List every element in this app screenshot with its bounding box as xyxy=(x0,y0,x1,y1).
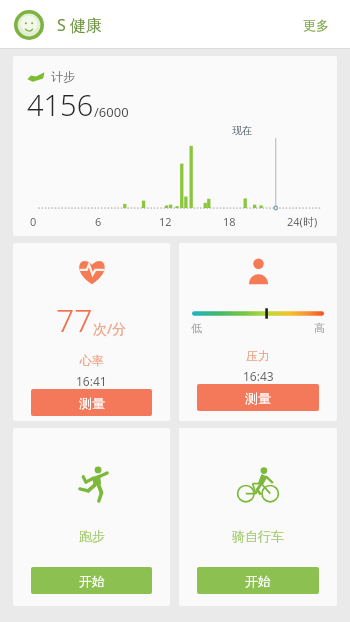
button[interactable]: 开始 xyxy=(31,567,152,594)
staticText: 计步 xyxy=(51,69,75,84)
button[interactable]: 测量 xyxy=(197,384,319,411)
staticText: 77 xyxy=(56,298,93,342)
other: 骑自行车 xyxy=(235,461,281,507)
button[interactable]: 测量 xyxy=(31,389,152,416)
staticText: 开始 xyxy=(79,573,105,589)
staticText: 测量 xyxy=(245,390,271,406)
button[interactable]: 更多 xyxy=(298,12,334,38)
button[interactable]: 开始 xyxy=(197,567,319,594)
staticText: /6000 xyxy=(94,103,129,121)
staticText: 骑自行车 xyxy=(232,528,284,544)
staticText: 6 xyxy=(95,214,159,229)
other: Profile xyxy=(14,10,44,40)
staticText: 高 xyxy=(314,321,325,335)
staticText: 心率 xyxy=(80,353,104,368)
staticText: 0 xyxy=(30,214,95,229)
button[interactable]: 计步 xyxy=(13,56,337,236)
button[interactable]: 骑自行车 xyxy=(179,428,337,606)
button[interactable]: 跑步 xyxy=(13,428,170,606)
staticText: 18 xyxy=(223,214,287,229)
staticText: 跑步 xyxy=(79,528,105,544)
staticText: 低 xyxy=(191,321,202,335)
staticText: 24(时) xyxy=(287,214,333,229)
staticText: 16:41 xyxy=(76,373,107,389)
staticText: 次/分 xyxy=(93,319,127,338)
staticText: 测量 xyxy=(79,395,105,411)
button[interactable]: 低 xyxy=(179,243,337,421)
staticText: 现在 xyxy=(232,124,252,137)
staticText: 压力 xyxy=(246,348,270,363)
staticText: 更多 xyxy=(303,17,329,33)
staticText: 12 xyxy=(159,214,223,229)
other: 跑步 xyxy=(69,461,115,507)
staticText: 开始 xyxy=(245,573,271,589)
button[interactable]: 77 xyxy=(13,243,170,421)
staticText: S 健康 xyxy=(57,14,102,36)
staticText: 16:43 xyxy=(243,368,274,384)
staticText: 4156 xyxy=(27,85,94,124)
